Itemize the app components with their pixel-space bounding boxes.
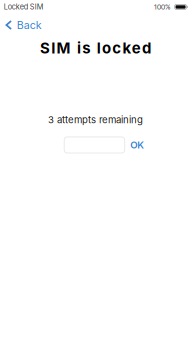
staticText: OK	[130, 139, 144, 151]
staticText: 3 attempts remaining	[48, 114, 143, 126]
button[interactable]: OK	[125, 137, 148, 153]
staticText: 100%	[154, 3, 171, 11]
staticText: SIM is locked	[40, 39, 151, 57]
staticText: Back	[17, 19, 42, 31]
staticText: Locked SIM	[4, 2, 44, 11]
button[interactable]: Back	[0, 18, 48, 32]
